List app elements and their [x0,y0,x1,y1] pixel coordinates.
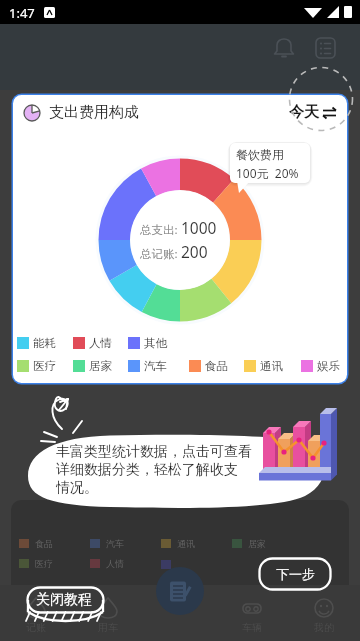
staticText: 其他 [144,336,167,350]
staticText: 总支出: [140,222,181,238]
staticText: 通讯 [260,359,283,373]
staticText: 居家 [248,538,266,549]
staticText: 情况。 [56,479,98,497]
button[interactable]: 今天 [289,103,336,122]
button[interactable]: 关闭教程 [26,586,105,624]
button[interactable]: 下一步 [258,557,332,591]
staticText: 医疗 [35,558,53,569]
staticText: 居家 [89,359,112,373]
staticText: 丰富类型统计数据，点击可查看 [56,443,252,461]
staticText: 详细数据分类，轻松了解收支 [56,461,238,479]
button[interactable]: Records list [309,32,341,64]
staticText: 通讯 [177,538,195,549]
staticText: 汽车 [144,359,167,373]
button[interactable]: 车辆 [216,592,288,634]
button[interactable]: 通讯 [244,359,283,373]
button[interactable]: 能耗 [17,336,56,350]
button[interactable]: 医疗 [17,359,56,373]
button[interactable]: 其他 [128,336,167,350]
staticText: 关闭教程 [36,591,92,609]
staticText: 用车 [98,621,118,634]
staticText: 1000 [181,217,217,238]
staticText: 能耗 [33,336,56,350]
button[interactable]: 记账 [0,592,72,634]
staticText: 记账 [26,621,46,634]
staticText: 1:47 [9,4,35,22]
staticText: 200 [181,241,208,262]
button[interactable]: 居家 [73,359,112,373]
staticText: 支出费用构成 [49,103,139,122]
staticText: 总记账: [140,246,181,262]
button[interactable]: Notifications [268,32,300,64]
staticText: 我的 [314,621,334,634]
button[interactable]: 娱乐 [301,359,340,373]
button[interactable]: 食品 [189,359,228,373]
staticText: 汽车 [106,538,124,549]
staticText: 今天 [289,103,319,122]
staticText: 下一步 [276,566,315,582]
button[interactable]: 用车 [72,592,144,634]
button[interactable]: 我的 [288,592,360,634]
button[interactable]: 汽车 [128,359,167,373]
staticText: 娱乐 [317,359,340,373]
staticText: 餐饮费用 [236,147,284,162]
staticText: 食品 [35,538,53,549]
staticText: 100元 20% [236,165,299,181]
button[interactable]: Add record [156,567,204,615]
staticText: 食品 [205,359,228,373]
button[interactable]: 人情 [73,336,112,350]
staticText: 人情 [106,558,124,569]
staticText: 人情 [89,336,112,350]
staticText: 车辆 [242,621,262,634]
staticText: 医疗 [33,359,56,373]
